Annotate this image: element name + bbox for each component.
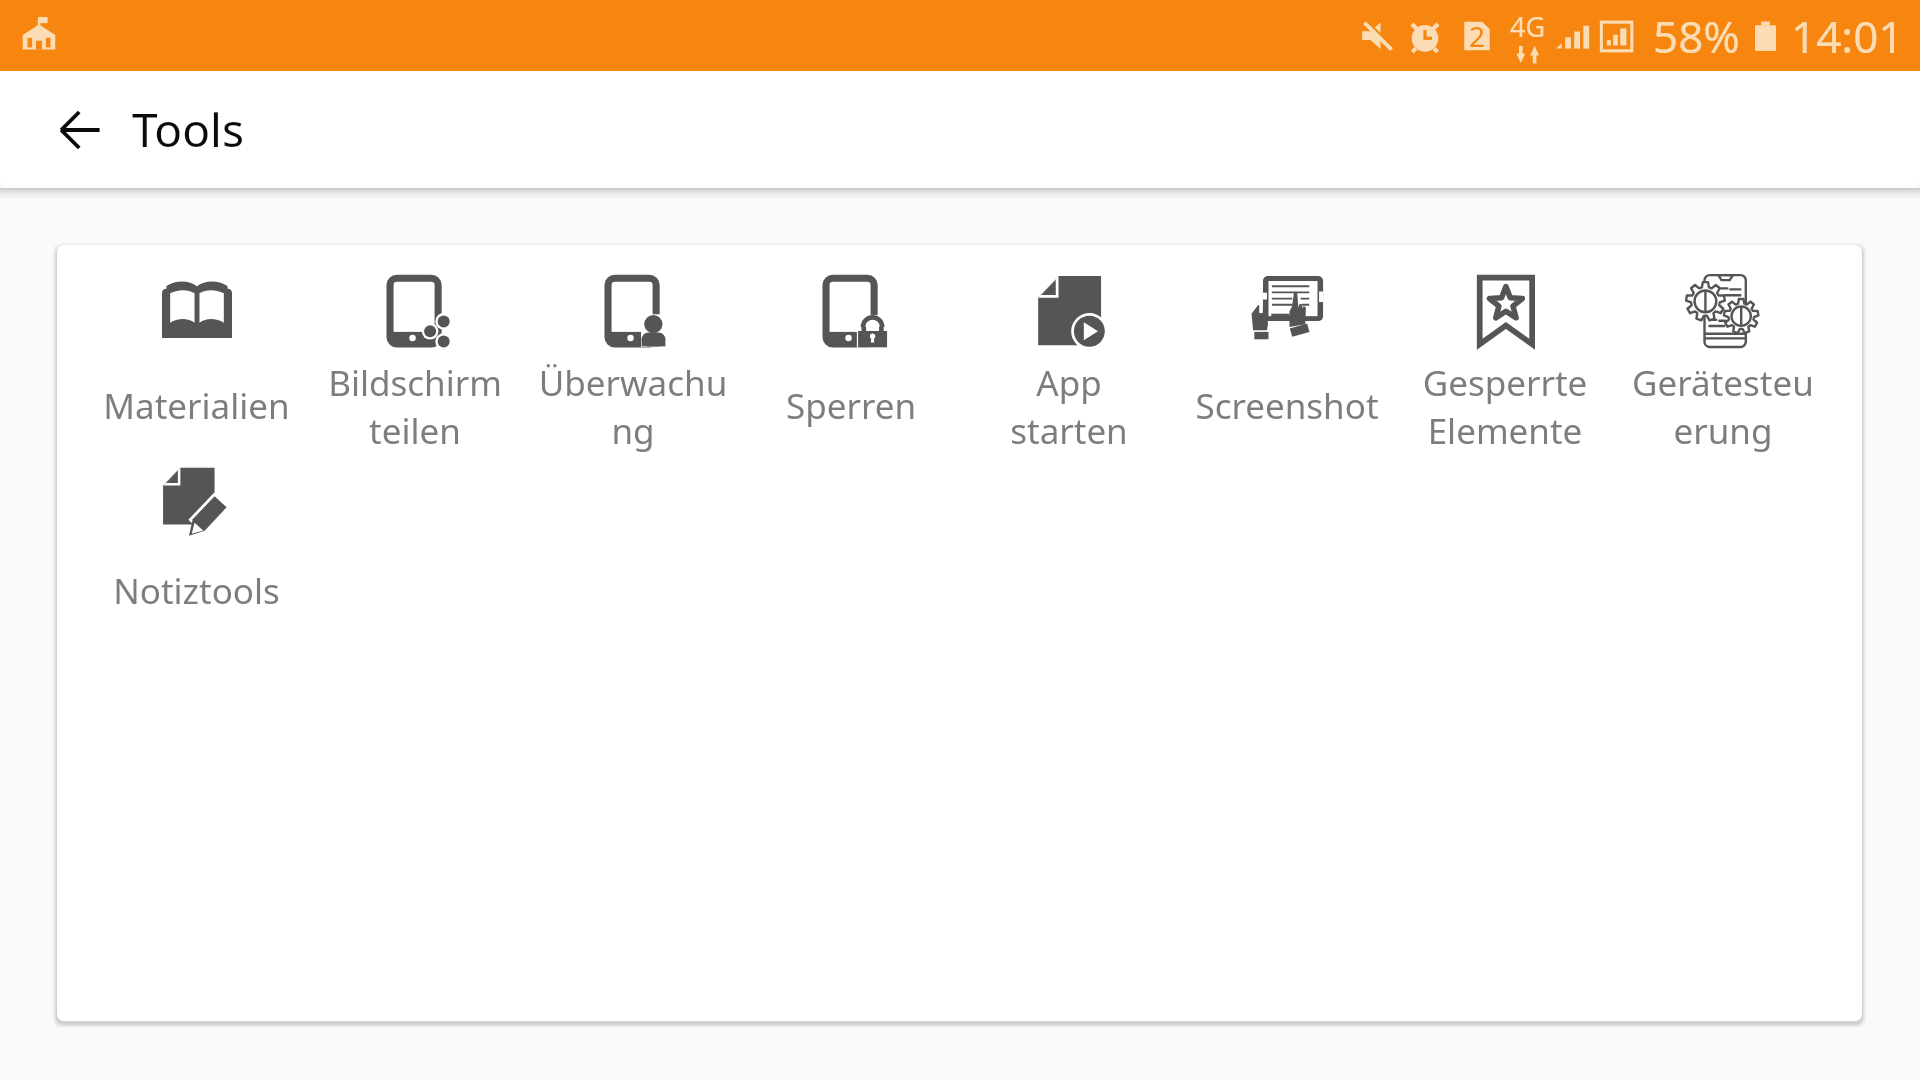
staticText: Materialien (100, 382, 293, 430)
button[interactable]: Gerätesteuerung (1614, 273, 1832, 458)
staticText: Bildschirm teilen (319, 359, 511, 454)
staticText: 58% (1653, 6, 1740, 66)
button[interactable]: Notiztools (87, 458, 306, 643)
staticText: Überwachung (537, 359, 729, 454)
staticText: App starten (973, 359, 1165, 454)
button[interactable]: Back (46, 96, 114, 164)
staticText: Sperren (755, 382, 947, 430)
staticText: Notiztools (100, 567, 293, 615)
staticText: 2 (1469, 17, 1486, 53)
staticText: 14:01 (1791, 6, 1904, 66)
staticText: Tools (132, 98, 244, 161)
staticText: 4G (1510, 8, 1546, 45)
button[interactable]: Materialien (87, 273, 306, 458)
staticText: Screenshot (1191, 382, 1383, 430)
button[interactable]: Gesperrte Elemente (1396, 273, 1614, 458)
button[interactable]: Überwachung (524, 273, 742, 458)
button[interactable]: App starten (960, 273, 1178, 458)
button[interactable]: Sperren (742, 273, 960, 458)
staticText: Gesperrte Elemente (1409, 359, 1601, 454)
button[interactable]: Bildschirm teilen (306, 273, 524, 458)
staticText: Gerätesteuerung (1627, 359, 1819, 454)
button[interactable]: Screenshot (1178, 273, 1396, 458)
